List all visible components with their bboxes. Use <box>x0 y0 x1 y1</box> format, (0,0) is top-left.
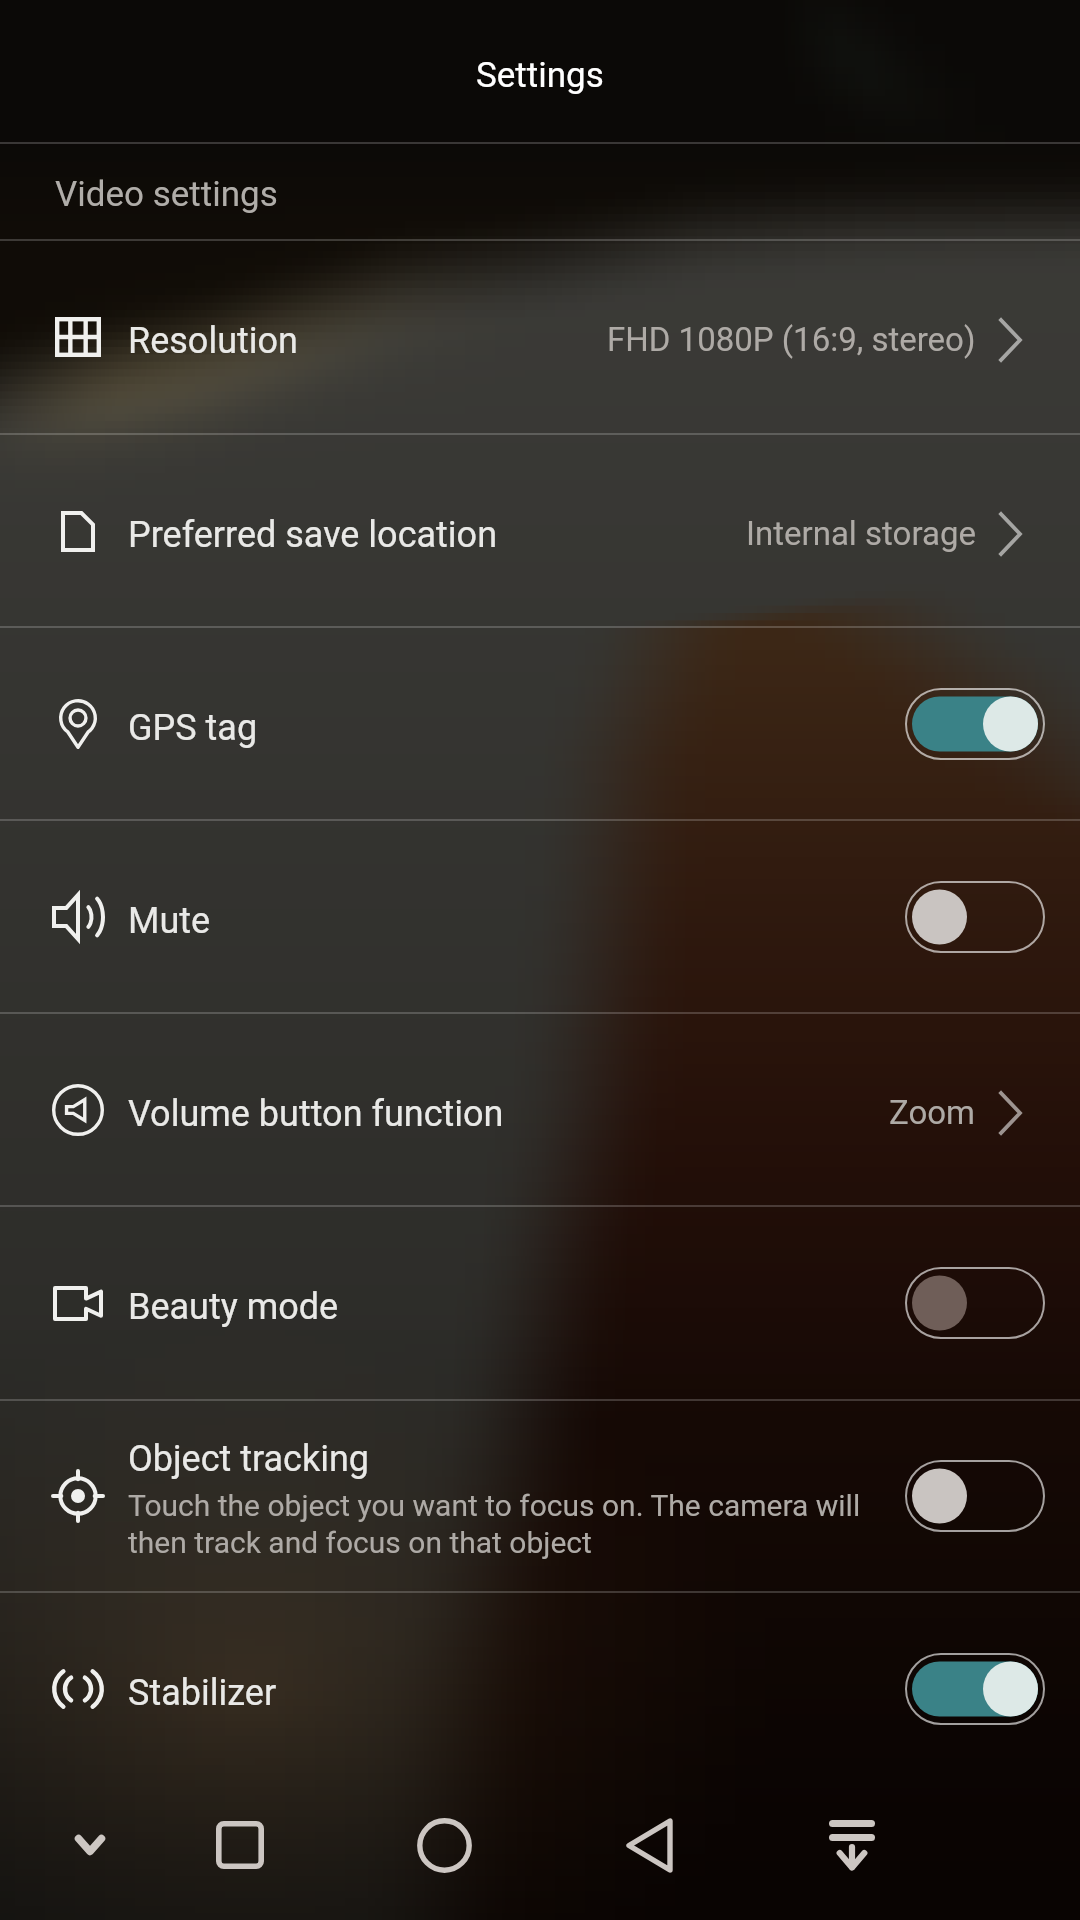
staticText: Settings <box>476 55 604 96</box>
button[interactable]: Off <box>905 881 1045 953</box>
staticText: Video settings <box>55 174 278 215</box>
button[interactable]: Object tracking <box>0 1400 1080 1592</box>
button[interactable]: Mute <box>0 820 1080 1013</box>
button[interactable]: Resolution <box>0 240 1080 433</box>
staticText: FHD 1080P (16:9, stereo) <box>607 320 976 359</box>
staticText: Stabilizer <box>128 1672 277 1714</box>
button[interactable]: GPS tag <box>0 627 1080 820</box>
staticText: GPS tag <box>128 707 258 749</box>
staticText: Object tracking <box>128 1438 370 1480</box>
button[interactable]: Hide keyboard <box>772 1770 932 1920</box>
button[interactable]: Off <box>905 1460 1045 1532</box>
button[interactable]: On <box>905 1653 1045 1725</box>
button[interactable]: Off <box>905 1267 1045 1339</box>
button[interactable]: Stabilizer <box>0 1592 1080 1785</box>
staticText: Resolution <box>128 320 298 362</box>
staticText: Mute <box>128 900 211 942</box>
staticText: Beauty mode <box>128 1286 339 1328</box>
button[interactable]: Volume button function <box>0 1013 1080 1206</box>
button[interactable]: On <box>905 688 1045 760</box>
button[interactable]: Back <box>569 1770 729 1920</box>
button[interactable]: Collapse <box>10 1770 170 1920</box>
button[interactable]: Home <box>364 1770 524 1920</box>
staticText: Preferred save location <box>128 514 498 556</box>
staticText: Internal storage <box>746 514 976 553</box>
button[interactable]: Recents <box>160 1770 320 1920</box>
staticText: Zoom <box>889 1093 976 1132</box>
button[interactable]: Preferred save location <box>0 434 1080 627</box>
staticText: Touch the object you want to focus on. T… <box>128 1488 861 1561</box>
button[interactable]: Beauty mode <box>0 1206 1080 1399</box>
staticText: Volume button function <box>128 1093 504 1135</box>
